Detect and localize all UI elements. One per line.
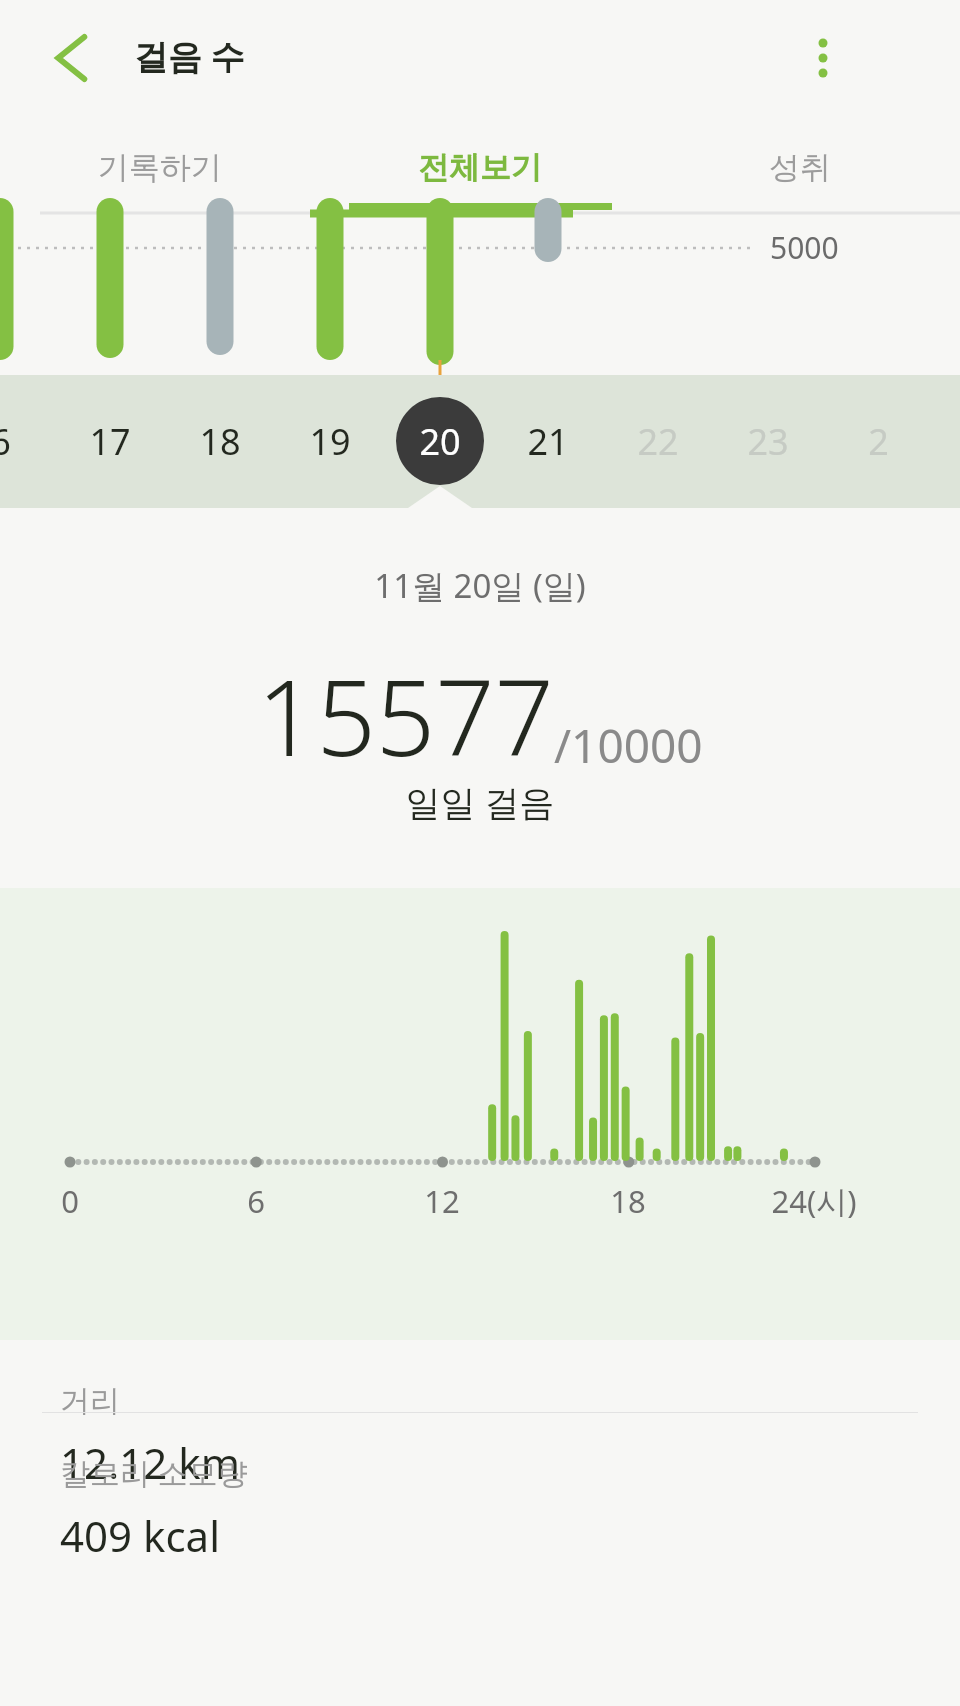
- button[interactable]: 21: [503, 396, 593, 486]
- button[interactable]: 거리: [60, 1382, 240, 1491]
- staticText: 409 kcal: [60, 1507, 220, 1564]
- button[interactable]: 17: [65, 396, 155, 486]
- staticText: 12: [397, 1180, 487, 1222]
- staticText: 17: [89, 417, 131, 466]
- button[interactable]: 19: [285, 396, 375, 486]
- staticText: 걸음 수: [134, 33, 245, 79]
- staticText: 18: [583, 1180, 673, 1222]
- staticText: /10000: [554, 714, 703, 777]
- button[interactable]: 성취: [640, 125, 960, 210]
- button[interactable]: 기록하기: [0, 125, 320, 210]
- button[interactable]: 22: [613, 396, 703, 486]
- staticText: 20: [419, 417, 461, 466]
- staticText: 6: [0, 417, 11, 466]
- staticText: 5000: [770, 227, 839, 268]
- staticText: 칼로리 소모량: [60, 1452, 248, 1493]
- button[interactable]: 2: [833, 396, 923, 486]
- button[interactable]: 칼로리 소모량: [60, 1452, 248, 1564]
- staticText: 전체보기: [418, 148, 542, 187]
- button[interactable]: 전체보기: [320, 125, 640, 210]
- button[interactable]: 20: [395, 396, 485, 486]
- staticText: 일일 걸음: [0, 778, 960, 826]
- button[interactable]: 23: [723, 396, 813, 486]
- staticText: 21: [527, 417, 569, 466]
- staticText: 24(시): [769, 1180, 859, 1222]
- staticText: 2: [868, 417, 889, 466]
- staticText: 0: [25, 1180, 115, 1222]
- button[interactable]: 6: [0, 396, 45, 486]
- staticText: 22: [637, 417, 679, 466]
- staticText: 기록하기: [98, 148, 222, 187]
- button[interactable]: Back: [34, 25, 100, 91]
- staticText: 11월 20일 (일): [0, 563, 960, 608]
- staticText: 거리: [60, 1382, 120, 1420]
- staticText: 6: [211, 1180, 301, 1222]
- staticText: 23: [747, 417, 789, 466]
- button[interactable]: 18: [175, 396, 265, 486]
- staticText: 18: [199, 417, 241, 466]
- button[interactable]: More options: [790, 25, 856, 91]
- staticText: 19: [309, 417, 351, 466]
- staticText: 12.12 km: [60, 1434, 240, 1491]
- staticText: 15577: [257, 645, 554, 787]
- staticText: 성취: [769, 148, 831, 187]
